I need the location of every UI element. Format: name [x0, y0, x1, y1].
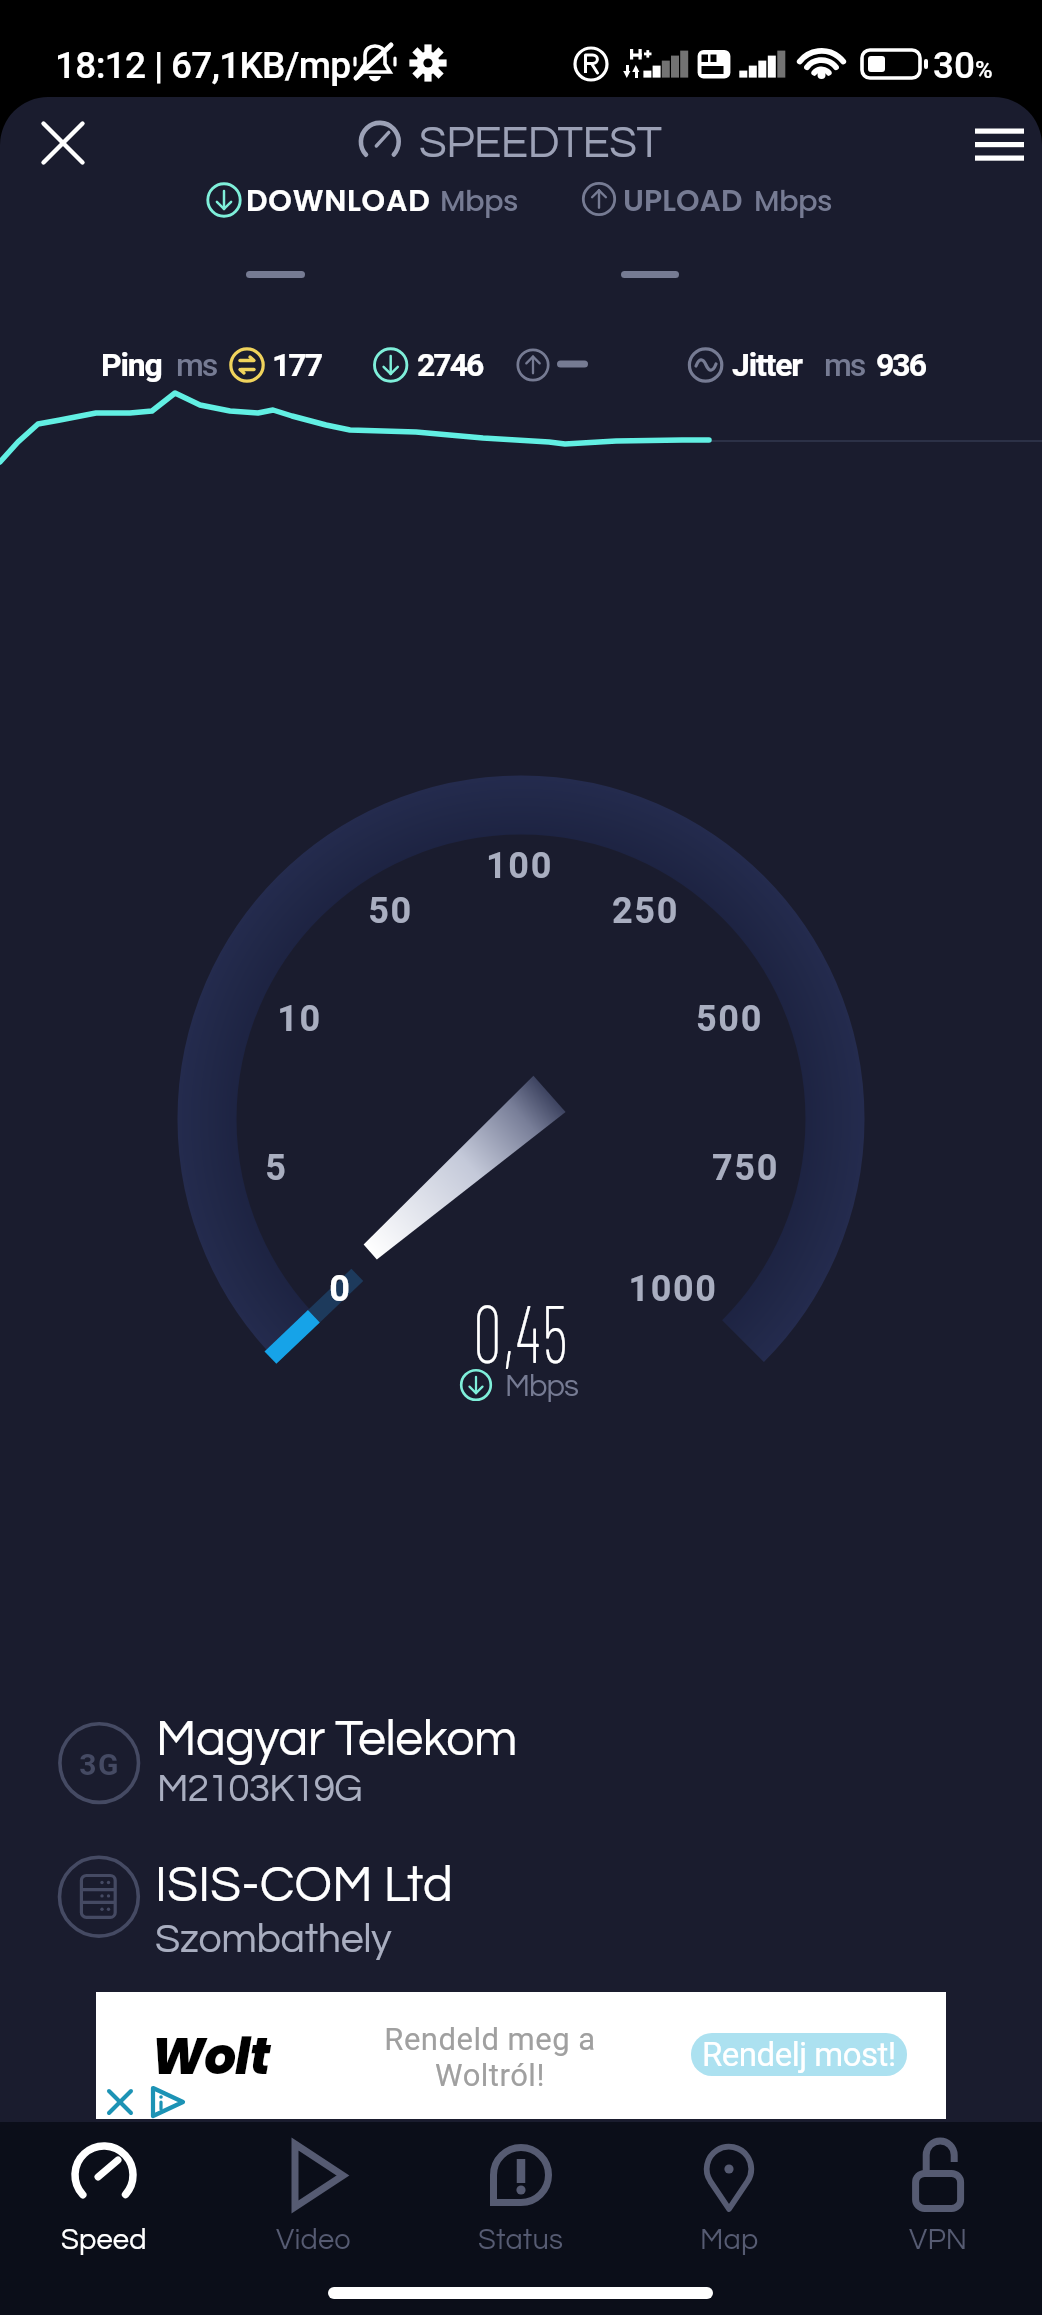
staticText: ISIS-COM Ltd	[155, 1860, 454, 1912]
button[interactable]	[198, 175, 528, 227]
staticText: Map	[700, 2225, 759, 2255]
staticText: 3G	[79, 1747, 120, 1782]
staticText: Wolt	[151, 2022, 270, 2092]
staticText: 30	[933, 44, 976, 87]
staticText: Status	[478, 2225, 564, 2255]
staticText: Mbps	[440, 181, 518, 222]
staticText: UPLOAD	[623, 180, 743, 222]
staticText: 18:12 | 67,1KB/mp	[55, 44, 351, 87]
staticText: 0,45	[473, 1283, 570, 1379]
staticText: Szombathely	[155, 1918, 392, 1960]
staticText: SPEEDTEST	[419, 120, 662, 166]
button[interactable]	[575, 175, 845, 227]
staticText: Rendeld meg a	[384, 2021, 596, 2057]
button[interactable]: Close	[24, 102, 102, 180]
staticText: ms	[824, 346, 865, 384]
staticText: Speed	[61, 2225, 147, 2255]
staticText: Ping	[101, 346, 162, 384]
staticText: 750	[712, 1147, 779, 1189]
button[interactable]: Map	[625, 2126, 833, 2276]
staticText: Mbps	[505, 1371, 578, 1403]
staticText: 250	[612, 890, 679, 932]
staticText: Jitter	[732, 346, 802, 384]
staticText: 50	[368, 890, 413, 932]
staticText: Video	[276, 2225, 351, 2255]
staticText: Rendelj most!	[702, 2035, 896, 2074]
staticText: VPN	[909, 2225, 968, 2255]
button[interactable]: Speed	[0, 2126, 208, 2276]
button[interactable]: VPN	[834, 2126, 1042, 2276]
staticText: 1000	[628, 1268, 718, 1310]
staticText: 0	[329, 1268, 352, 1310]
staticText: 177	[272, 346, 322, 384]
staticText: Magyar Telekom	[156, 1714, 517, 1766]
button[interactable]: Close ad	[104, 2086, 136, 2118]
staticText: 500	[696, 998, 763, 1040]
staticText: ms	[176, 346, 217, 384]
staticText: 2746	[417, 346, 483, 384]
button[interactable]: Menu	[960, 102, 1038, 180]
staticText: 5	[265, 1147, 288, 1189]
staticText: 10	[277, 998, 322, 1040]
staticText: %	[975, 56, 993, 84]
staticText: Mbps	[754, 181, 832, 222]
button[interactable]: Video	[209, 2126, 417, 2276]
staticText: Woltról!	[435, 2057, 545, 2093]
button[interactable]: Rendelj most!	[691, 2033, 907, 2076]
button[interactable]: Status	[417, 2126, 625, 2276]
staticText: DOWNLOAD	[246, 180, 431, 222]
staticText: 936	[876, 346, 926, 384]
staticText: 100	[486, 845, 553, 887]
staticText: M2103K19G	[157, 1769, 362, 1809]
